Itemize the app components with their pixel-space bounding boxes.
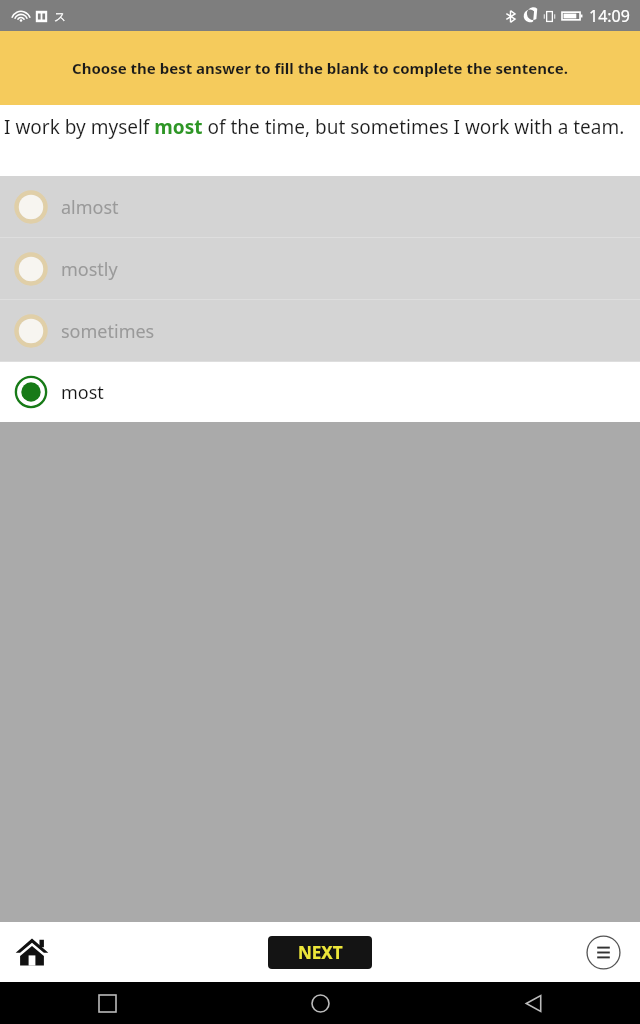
button[interactable]: Menu — [583, 932, 623, 972]
staticText: NEXT — [298, 941, 343, 964]
staticText: 14:09 — [589, 5, 630, 27]
button[interactable]: sometimes — [0, 300, 640, 362]
staticText: almost — [61, 195, 119, 220]
staticText: I work by myself most of the time, but s… — [4, 114, 625, 140]
button[interactable]: Home — [214, 982, 427, 1024]
button[interactable]: almost — [0, 176, 640, 238]
staticText: most — [61, 380, 104, 405]
staticText: sometimes — [61, 319, 155, 344]
button[interactable]: Home — [8, 928, 56, 976]
button[interactable]: NEXT — [268, 936, 372, 969]
staticText: Choose the best answer to fill the blank… — [72, 58, 568, 78]
staticText: mostly — [61, 257, 118, 282]
button[interactable]: Back — [427, 982, 640, 1024]
staticText: ス — [54, 9, 67, 24]
button[interactable]: most — [0, 362, 640, 422]
button[interactable]: mostly — [0, 238, 640, 300]
button[interactable]: Recents — [0, 982, 214, 1024]
